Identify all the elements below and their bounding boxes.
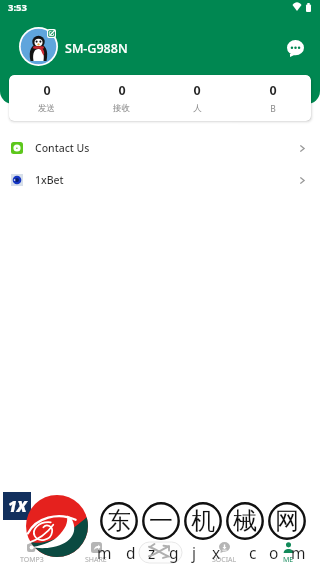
staticText: B	[270, 103, 276, 115]
staticText: 1xBet	[35, 173, 64, 187]
button[interactable]: 0	[159, 75, 235, 121]
staticText: ME	[283, 555, 294, 565]
staticText: TOMP3	[20, 555, 44, 565]
staticText: 1X	[8, 496, 27, 516]
staticText: x	[212, 542, 221, 563]
staticText: g	[169, 542, 179, 563]
button[interactable]: Feedback	[284, 37, 306, 59]
button[interactable]: Profile avatar	[19, 27, 58, 66]
staticText: 0	[118, 82, 126, 99]
staticText: j	[192, 542, 196, 563]
staticText: SOCIAL	[212, 555, 237, 565]
button[interactable]: ME	[256, 539, 320, 568]
button[interactable]: TOMP3	[0, 539, 64, 568]
staticText: MORE	[150, 555, 171, 565]
staticText: z	[148, 542, 156, 563]
staticText: SHARE	[85, 555, 107, 565]
staticText: 械	[233, 506, 257, 536]
staticText: 一	[149, 506, 173, 536]
button[interactable]: 0	[235, 75, 311, 121]
button[interactable]: Contact Us	[0, 132, 320, 164]
staticText: 接收	[113, 103, 130, 114]
staticText: 0	[193, 82, 201, 99]
staticText: d	[126, 542, 136, 563]
button[interactable]: Advertisement	[0, 488, 320, 568]
staticText: 人	[193, 103, 202, 114]
staticText: m	[291, 542, 306, 563]
button[interactable]: 1xBet	[0, 164, 320, 196]
staticText: Contact Us	[35, 141, 90, 155]
button[interactable]: SHARE	[64, 539, 128, 568]
staticText: 机	[191, 506, 215, 536]
staticText: 东	[107, 506, 131, 536]
button[interactable]: SOCIAL	[192, 539, 256, 568]
button[interactable]: 0	[9, 75, 84, 121]
staticText: 0	[43, 82, 51, 99]
staticText: SM-G988N	[65, 40, 128, 57]
staticText: 3:53	[8, 1, 27, 14]
staticText: 0	[269, 82, 277, 99]
staticText: o	[269, 542, 279, 563]
staticText: c	[249, 542, 257, 563]
staticText: 发送	[38, 103, 55, 114]
button[interactable]: 0	[84, 75, 159, 121]
button[interactable]: MORE	[128, 539, 192, 568]
staticText: m	[97, 542, 112, 563]
staticText: 网	[275, 506, 299, 536]
